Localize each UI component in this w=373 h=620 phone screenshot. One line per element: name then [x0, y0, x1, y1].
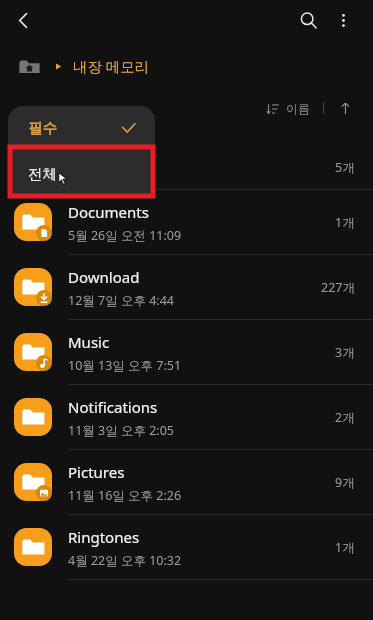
- button[interactable]: Notifications: [0, 385, 373, 450]
- staticText: 5월 26일 오전 11:09: [68, 227, 182, 244]
- staticText: 1개: [335, 214, 355, 231]
- button[interactable]: 내장 메모리: [73, 52, 150, 80]
- staticText: 2개: [335, 409, 355, 426]
- button[interactable]: Pictures: [0, 450, 373, 515]
- staticText: 1개: [335, 539, 355, 556]
- staticText: 11월 16일 오후 2:26: [68, 487, 182, 504]
- button[interactable]: 이름: [263, 96, 314, 121]
- button[interactable]: Music: [0, 320, 373, 385]
- staticText: 이름: [286, 101, 310, 116]
- button[interactable]: More options: [325, 2, 361, 38]
- staticText: 내장 메모리: [73, 56, 150, 76]
- staticText: 전체: [28, 165, 57, 183]
- staticText: 5개: [335, 159, 355, 176]
- button[interactable]: Back: [5, 2, 41, 38]
- staticText: 12월 7일 오후 4:44: [68, 292, 175, 309]
- staticText: 227개: [321, 279, 355, 296]
- button[interactable]: 전체: [8, 150, 155, 197]
- staticText: 3개: [335, 344, 355, 361]
- staticText: 11월 3일 오후 2:05: [68, 422, 175, 439]
- button[interactable]: :22: [0, 124, 373, 190]
- button[interactable]: 필수: [8, 106, 155, 150]
- staticText: Ringtones: [68, 527, 140, 547]
- staticText: Pictures: [68, 462, 125, 482]
- button[interactable]: Internal storage root: [16, 53, 42, 79]
- button[interactable]: Documents: [0, 190, 373, 255]
- button[interactable]: Search: [290, 2, 326, 38]
- staticText: Documents: [68, 202, 149, 222]
- staticText: Music: [68, 332, 110, 352]
- staticText: Download: [68, 267, 140, 287]
- staticText: Notifications: [68, 397, 158, 417]
- staticText: 4월 22일 오후 10:32: [68, 552, 182, 569]
- staticText: 9개: [335, 474, 355, 491]
- staticText: 10월 13일 오후 7:51: [68, 357, 182, 374]
- button[interactable]: Ringtones: [0, 515, 373, 580]
- staticText: 필수: [28, 119, 57, 137]
- button[interactable]: Ascending order: [333, 96, 357, 120]
- button[interactable]: Download: [0, 255, 373, 320]
